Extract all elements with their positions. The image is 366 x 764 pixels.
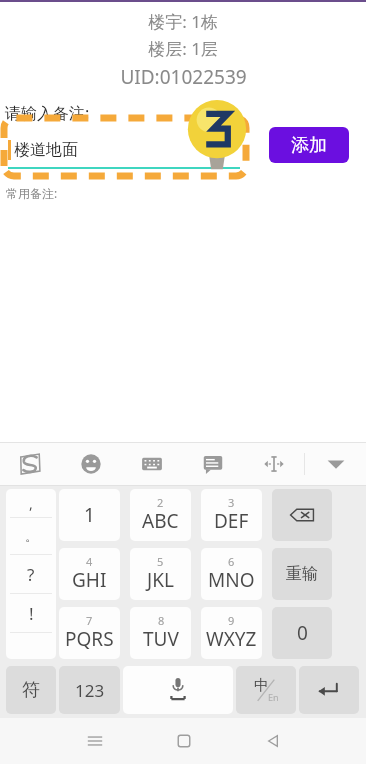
button[interactable]: 楼道地面 bbox=[8, 136, 240, 170]
button[interactable]: ? bbox=[6, 555, 56, 593]
staticText: WXYZ bbox=[206, 626, 257, 652]
button[interactable]: Space, voice input bbox=[123, 666, 233, 714]
staticText: 中 bbox=[254, 676, 269, 695]
button[interactable]: ! bbox=[6, 594, 56, 632]
button[interactable]: 9 bbox=[201, 607, 262, 659]
staticText: ? bbox=[27, 563, 35, 586]
staticText: 楼道地面 bbox=[14, 140, 78, 160]
button[interactable]: 123 bbox=[59, 666, 120, 714]
staticText: MNO bbox=[208, 567, 255, 593]
button[interactable]: 3 bbox=[201, 489, 262, 541]
button[interactable]: Sogou input method bbox=[0, 442, 60, 486]
staticText: 4 bbox=[86, 554, 93, 569]
staticText: JKL bbox=[147, 567, 174, 593]
button[interactable]: Phrases bbox=[182, 442, 243, 486]
button[interactable]: 。 bbox=[6, 518, 56, 554]
staticText: PQRS bbox=[65, 626, 114, 652]
button[interactable]: Switch Chinese English bbox=[236, 666, 296, 714]
staticText: ABC bbox=[142, 508, 179, 534]
staticText: DEF bbox=[214, 508, 249, 534]
staticText: 0 bbox=[297, 620, 308, 646]
staticText: 5 bbox=[157, 554, 164, 569]
staticText: 9 bbox=[228, 613, 235, 628]
staticText: 楼层: 1层 bbox=[148, 37, 218, 60]
staticText: 8 bbox=[158, 613, 165, 628]
staticText: , bbox=[29, 494, 33, 513]
staticText: GHI bbox=[72, 567, 107, 593]
staticText: En bbox=[268, 691, 279, 703]
button[interactable]: Back bbox=[228, 718, 317, 764]
staticText: 常用备注: bbox=[6, 185, 58, 201]
button[interactable]: 6 bbox=[201, 548, 262, 600]
button[interactable]: 2 bbox=[130, 489, 191, 541]
staticText: 6 bbox=[228, 554, 235, 569]
button[interactable]: 8 bbox=[130, 607, 191, 659]
button[interactable]: 4 bbox=[59, 548, 120, 600]
staticText: UID:01022539 bbox=[120, 64, 247, 90]
button[interactable]: 符 bbox=[6, 666, 56, 714]
staticText: ! bbox=[29, 602, 34, 625]
button[interactable]: 1 bbox=[59, 489, 120, 541]
button[interactable]: , bbox=[6, 489, 56, 517]
button[interactable]: Backspace bbox=[272, 489, 332, 541]
staticText: 7 bbox=[86, 613, 93, 628]
button[interactable]: Move cursor bbox=[243, 442, 304, 486]
button[interactable]: 5 bbox=[130, 548, 191, 600]
staticText: 楼宇: 1栋 bbox=[148, 10, 218, 33]
staticText: 符 bbox=[22, 679, 40, 702]
staticText: 2 bbox=[157, 495, 164, 510]
staticText: 添加 bbox=[291, 134, 327, 157]
staticText: 请输入备注: bbox=[5, 102, 90, 124]
staticText: 。 bbox=[25, 528, 38, 544]
button[interactable]: 7 bbox=[59, 607, 120, 659]
button[interactable]: Keyboard layout bbox=[121, 442, 182, 486]
button[interactable]: 重输 bbox=[272, 548, 332, 600]
staticText: 1 bbox=[84, 502, 95, 528]
button[interactable]: Hide keyboard bbox=[305, 442, 366, 486]
button[interactable]: Home bbox=[139, 718, 228, 764]
staticText: 重输 bbox=[286, 564, 318, 584]
button[interactable]: Recent apps bbox=[50, 718, 139, 764]
button[interactable]: Emoji bbox=[60, 442, 121, 486]
staticText: 123 bbox=[75, 679, 105, 702]
button[interactable]: Enter bbox=[299, 666, 359, 714]
staticText: 3 bbox=[228, 495, 235, 510]
button[interactable]: 添加 bbox=[269, 127, 349, 163]
button[interactable]: 0 bbox=[272, 607, 332, 659]
staticText: TUV bbox=[143, 626, 179, 652]
